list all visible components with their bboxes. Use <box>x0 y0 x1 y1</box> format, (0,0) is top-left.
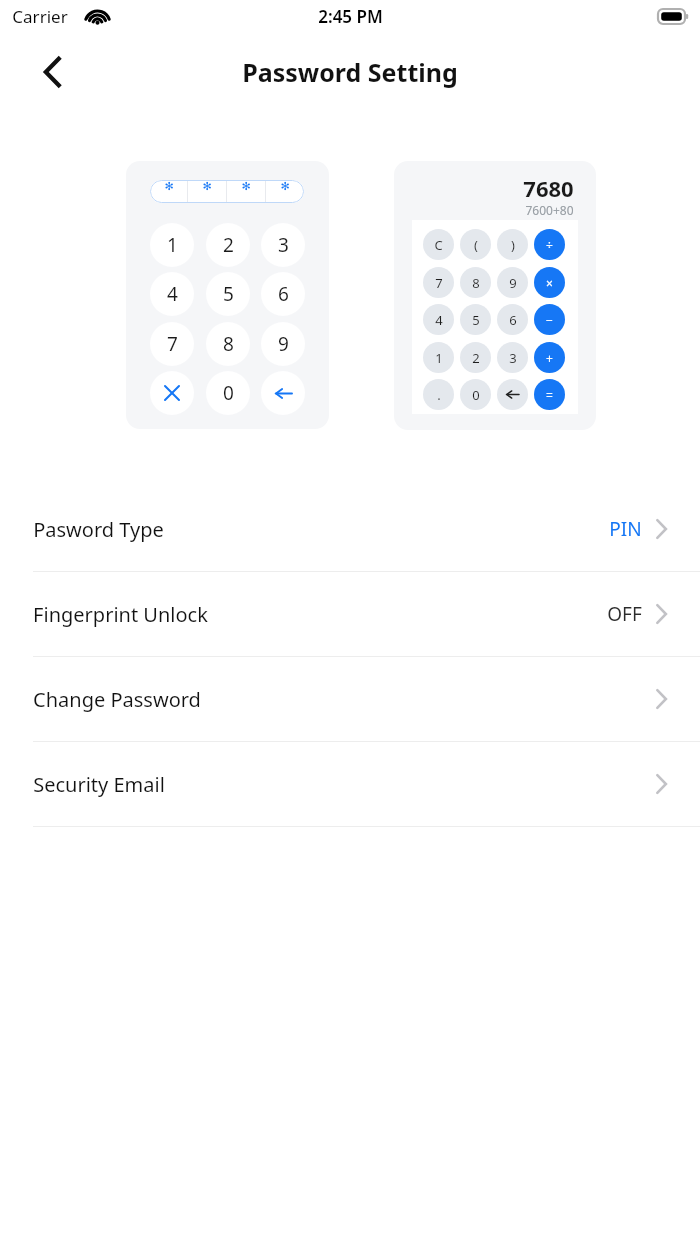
staticText: C <box>434 236 443 254</box>
button[interactable]: Fingerprint Unlock <box>0 572 700 656</box>
staticText: 3 <box>278 232 289 258</box>
button[interactable]: − <box>534 304 565 335</box>
staticText: 5 <box>223 281 234 307</box>
button[interactable]: Change Password <box>0 657 700 741</box>
staticText: ✻ <box>280 180 290 193</box>
button[interactable]: = <box>534 379 565 410</box>
staticText: 8 <box>472 274 480 292</box>
staticText: + <box>546 350 553 366</box>
button[interactable] <box>497 379 528 410</box>
staticText: 1 <box>167 232 178 258</box>
staticText: ✻ <box>241 180 251 193</box>
staticText: 9 <box>509 274 517 292</box>
staticText: Carrier <box>12 5 68 28</box>
button[interactable]: 3 <box>497 342 528 373</box>
staticText: − <box>546 312 553 328</box>
button[interactable]: 6 <box>497 304 528 335</box>
staticText: Pasword Type <box>33 516 164 543</box>
button[interactable]: C <box>423 229 454 260</box>
staticText: 2 <box>472 349 480 367</box>
button[interactable]: 8 <box>206 322 250 366</box>
button[interactable]: Back <box>26 45 80 99</box>
staticText: ÷ <box>546 237 553 253</box>
staticText: 3 <box>509 349 517 367</box>
staticText: 7680 <box>523 173 574 203</box>
button[interactable]: 2 <box>460 342 491 373</box>
button[interactable]: 1 <box>150 223 194 267</box>
staticText: 5 <box>472 311 480 329</box>
button[interactable]: 0 <box>460 379 491 410</box>
button[interactable]: 3 <box>261 223 305 267</box>
staticText: . <box>437 386 441 404</box>
staticText: ✻ <box>164 180 174 193</box>
staticText: 6 <box>509 311 517 329</box>
button[interactable]: 9 <box>261 322 305 366</box>
button[interactable]: ) <box>497 229 528 260</box>
staticText: 8 <box>223 331 234 357</box>
staticText: ( <box>474 236 478 254</box>
staticText: 1 <box>435 349 443 367</box>
staticText: Security Email <box>33 771 165 798</box>
button[interactable] <box>150 371 194 415</box>
staticText: 2:45 PM <box>318 5 383 28</box>
staticText: × <box>546 275 553 291</box>
staticText: Password Setting <box>242 55 458 89</box>
button[interactable]: 1 <box>423 342 454 373</box>
staticText: Fingerprint Unlock <box>33 601 208 628</box>
button[interactable]: 5 <box>460 304 491 335</box>
staticText: 9 <box>278 331 289 357</box>
staticText: ✻ <box>202 180 212 193</box>
button[interactable]: + <box>534 342 565 373</box>
button[interactable]: 6 <box>261 272 305 316</box>
button[interactable]: 2 <box>206 223 250 267</box>
staticText: 0 <box>472 386 480 404</box>
button[interactable]: 7 <box>150 322 194 366</box>
staticText: = <box>546 387 553 403</box>
staticText: PIN <box>609 516 642 542</box>
staticText: 2 <box>223 232 234 258</box>
staticText: OFF <box>607 601 642 627</box>
button[interactable] <box>261 371 305 415</box>
staticText: 7 <box>167 331 178 357</box>
button[interactable]: 4 <box>150 272 194 316</box>
staticText: 4 <box>167 281 178 307</box>
button[interactable]: Security Email <box>0 742 700 826</box>
staticText: Change Password <box>33 686 201 713</box>
button[interactable]: 8 <box>460 267 491 298</box>
button[interactable]: 5 <box>206 272 250 316</box>
button[interactable]: 7 <box>423 267 454 298</box>
button[interactable]: ✻ <box>150 180 304 203</box>
button[interactable]: 0 <box>206 371 250 415</box>
staticText: 7 <box>435 274 443 292</box>
button[interactable]: 4 <box>423 304 454 335</box>
button[interactable]: 9 <box>497 267 528 298</box>
button[interactable]: ( <box>460 229 491 260</box>
button[interactable]: . <box>423 379 454 410</box>
staticText: 7600+80 <box>525 202 574 218</box>
button[interactable]: ÷ <box>534 229 565 260</box>
button[interactable]: Pasword Type <box>0 487 700 571</box>
staticText: 4 <box>435 311 443 329</box>
staticText: 0 <box>223 380 234 406</box>
button[interactable]: × <box>534 267 565 298</box>
staticText: 6 <box>278 281 289 307</box>
staticText: ) <box>511 236 515 254</box>
